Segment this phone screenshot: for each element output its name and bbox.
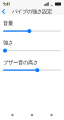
button[interactable]: Home (25, 110, 39, 120)
button[interactable]: Back (5, 110, 19, 120)
staticText: ブザー音の高さ (3, 59, 38, 66)
staticText: 9:41 (3, 1, 10, 7)
staticText: 音量 (3, 20, 13, 27)
button[interactable]: Back (0, 8, 7, 15)
staticText: 強さ (3, 40, 13, 46)
staticText: バイブの強さ設定 (12, 8, 52, 15)
button[interactable]: Recents (44, 110, 58, 120)
